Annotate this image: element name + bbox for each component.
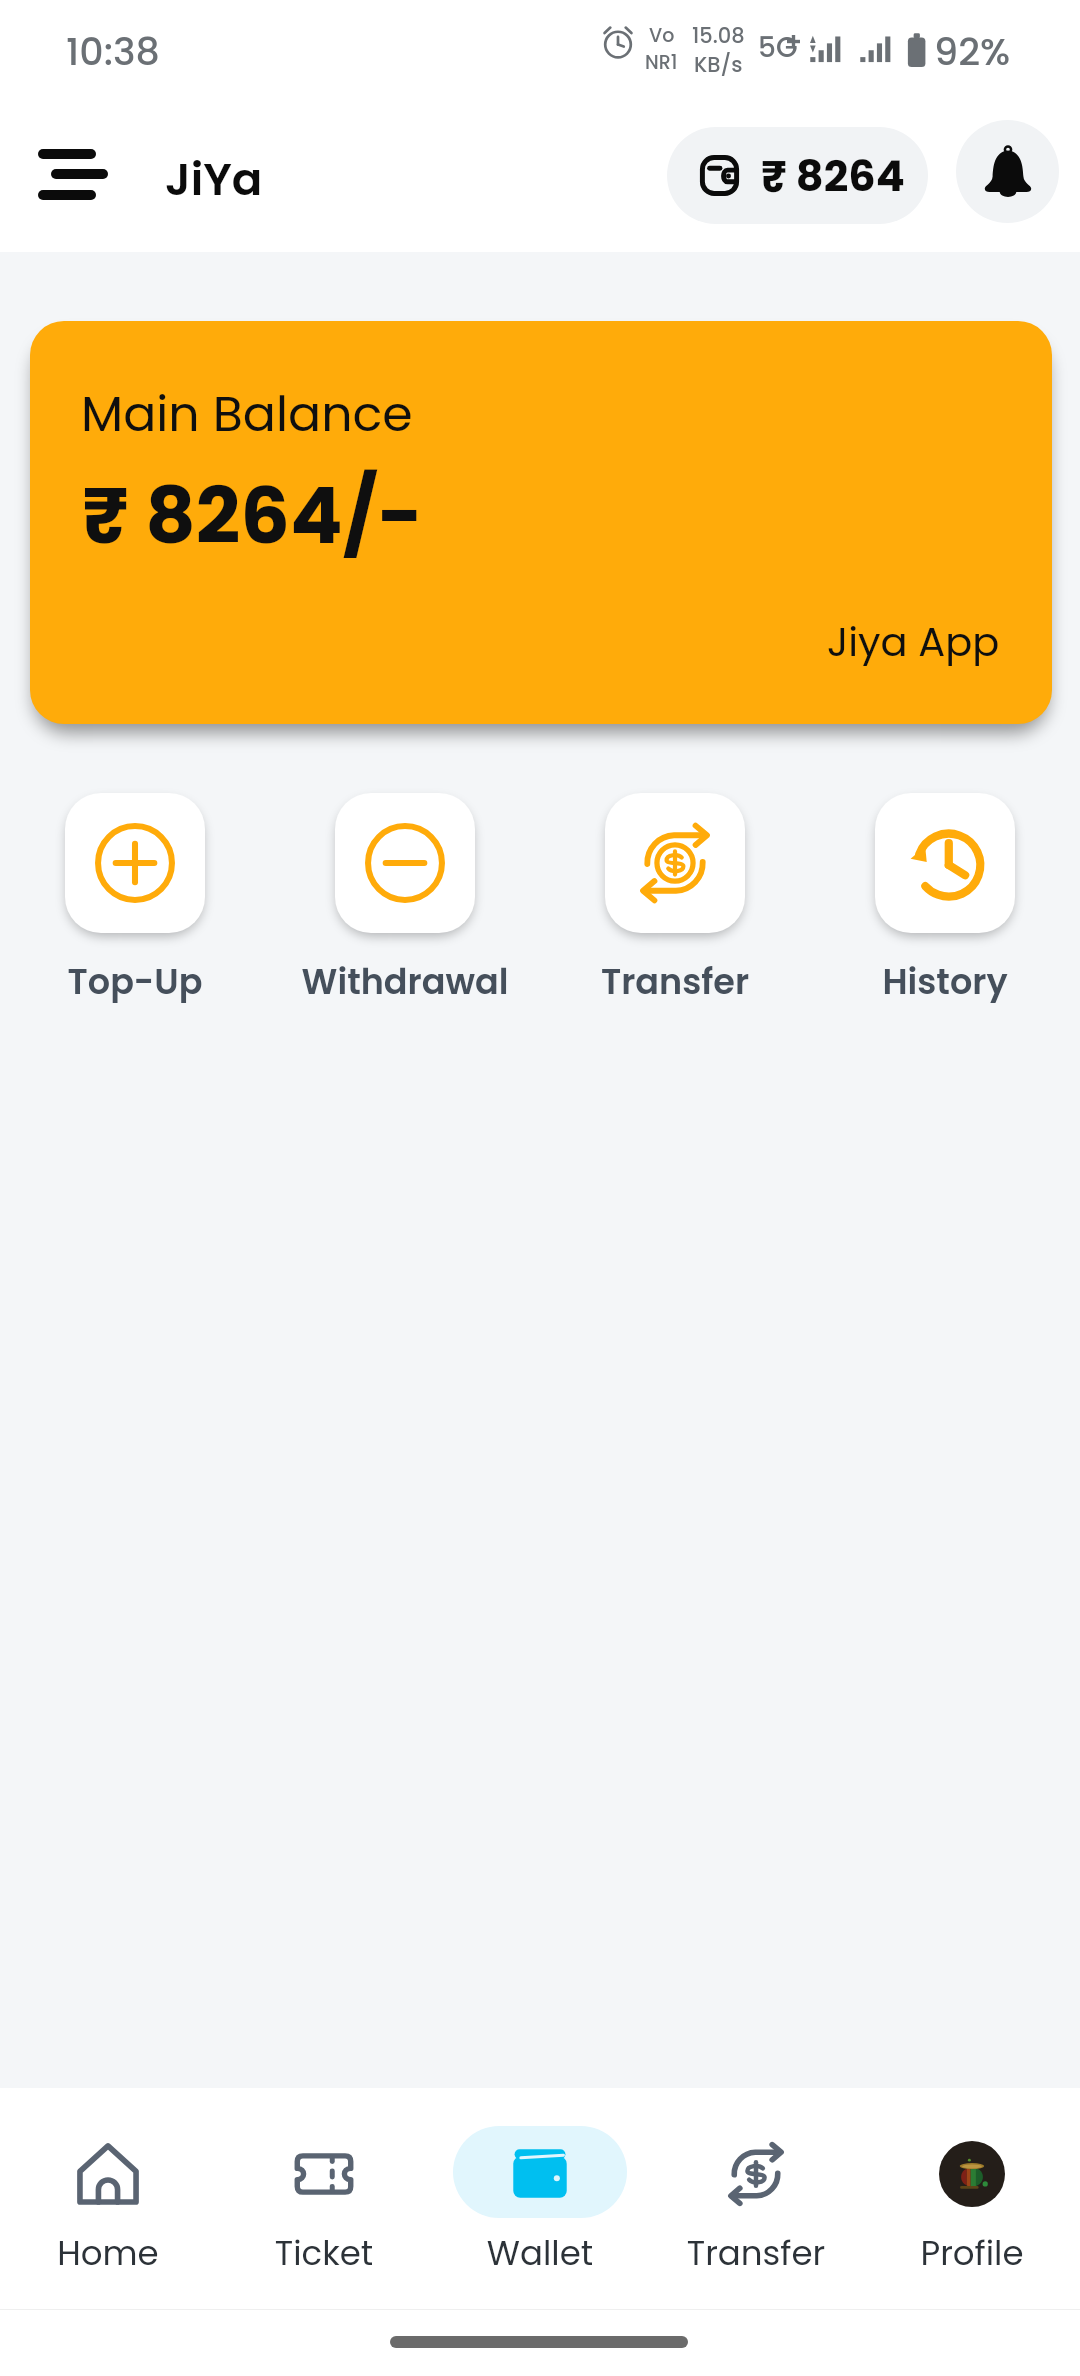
button[interactable]: Ticket bbox=[216, 2126, 432, 2276]
staticText: Transfer bbox=[540, 957, 810, 1006]
button[interactable]: Transfer bbox=[648, 2126, 864, 2276]
staticText: Main Balance bbox=[81, 380, 413, 449]
staticText: ₹ 8264 bbox=[761, 146, 905, 206]
staticText: Transfer bbox=[648, 2229, 864, 2277]
button[interactable]: Notifications bbox=[956, 120, 1059, 223]
button[interactable]: Profile bbox=[864, 2126, 1080, 2276]
staticText: NR1 bbox=[645, 49, 678, 76]
staticText: Vo bbox=[649, 22, 675, 49]
staticText: Ticket bbox=[216, 2229, 432, 2277]
button[interactable]: Wallet bbox=[432, 2126, 648, 2276]
staticText: Top-Up bbox=[0, 957, 270, 1006]
staticText: 5G bbox=[758, 28, 798, 67]
staticText: Wallet bbox=[432, 2229, 648, 2277]
staticText: Home bbox=[0, 2229, 216, 2277]
staticText: KB/s bbox=[694, 50, 743, 79]
button[interactable]: Main Balance bbox=[30, 321, 1052, 724]
button[interactable]: Transfer bbox=[540, 793, 810, 1003]
staticText: History bbox=[810, 957, 1080, 1006]
staticText: Jiya App bbox=[827, 614, 1000, 670]
staticText: ₹ 8264/- bbox=[82, 461, 424, 570]
button[interactable]: Menu bbox=[22, 125, 118, 221]
staticText: Withdrawal bbox=[270, 957, 540, 1006]
staticText: JiYa bbox=[165, 148, 263, 211]
staticText: 10:38 bbox=[66, 25, 160, 78]
staticText: 15.08 bbox=[692, 21, 745, 50]
button[interactable]: Withdrawal bbox=[270, 793, 540, 1003]
button[interactable]: Top-Up bbox=[0, 793, 270, 1003]
staticText: Profile bbox=[864, 2229, 1080, 2277]
button[interactable]: Home bbox=[0, 2126, 216, 2276]
button[interactable]: History bbox=[810, 793, 1080, 1003]
staticText: 92% bbox=[934, 25, 1011, 78]
button[interactable]: ₹ 8264 bbox=[667, 127, 928, 224]
